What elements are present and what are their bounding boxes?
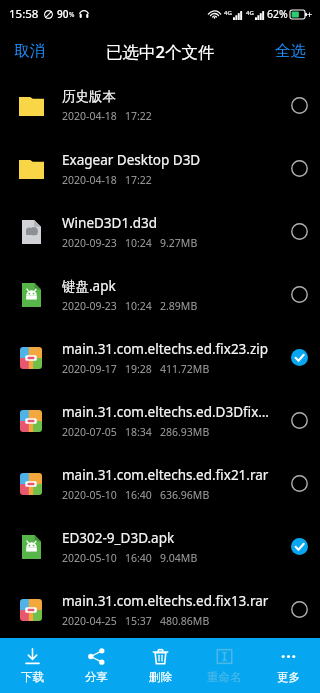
button[interactable]: main.31.com.eltechs.ed.fix23.zip [0,326,320,389]
button[interactable]: 删除 [128,638,192,693]
button[interactable]: Selected [278,326,320,389]
staticText: 全选 [275,41,306,61]
staticText: 2020-04-18 17:22 [62,173,152,187]
button[interactable]: 重命名 [192,638,256,693]
staticText: 2020-04-18 17:22 [62,109,152,123]
button[interactable]: Select [278,452,320,515]
button[interactable]: main.31.com.eltechs.ed.fix12.rar [0,641,320,693]
staticText: 删除 [149,670,172,684]
staticText: 键盘.apk [62,277,116,295]
button[interactable]: 下载 [0,638,64,693]
button[interactable]: Select [278,578,320,641]
staticText: main.31.com.eltechs.ed.fix23.zip [62,340,269,358]
staticText: main.31.com.eltechs.ed.fix13.rar [62,592,269,610]
button[interactable]: Exagear Desktop D3D [0,137,320,200]
staticText: 4G [224,9,232,17]
button[interactable]: 键盘.apk [0,263,320,326]
button[interactable]: 全选 [261,33,320,69]
button[interactable]: Select [278,74,320,137]
staticText: 分享 [85,670,108,684]
staticText: main.31.com.eltechs.ed.fix12.rar [62,649,269,667]
staticText: % [69,10,75,19]
staticText: ED302-9_D3D.apk [62,529,175,547]
staticText: 2020-04-25 15:37 480.86MB [62,614,210,628]
staticText: 已选中2个文件 [106,40,215,63]
button[interactable]: WineD3D1.d3d [0,200,320,263]
staticText: main.31.com.eltechs.ed.D3Dfix2.rar [62,403,270,421]
button[interactable]: main.31.com.eltechs.ed.D3Dfix2.rar [0,389,320,452]
staticText: Exagear Desktop D3D [62,151,201,169]
staticText: 2020-09-17 19:28 411.72MB [62,362,210,376]
button[interactable]: 分享 [64,638,128,693]
button[interactable]: main.31.com.eltechs.ed.fix21.rar [0,452,320,515]
button[interactable]: Select [278,389,320,452]
staticText: 2020-04-20 12:10 390.24MB [62,671,210,685]
button[interactable]: main.31.com.eltechs.ed.fix13.rar [0,578,320,641]
button[interactable]: Select [278,200,320,263]
button[interactable]: 取消 [0,33,59,69]
staticText: 2020-05-10 16:40 636.96MB [62,488,210,502]
staticText: 2020-09-23 10:24 2.89MB [62,299,198,313]
staticText: 62% [267,7,288,21]
staticText: 15:58 [9,6,39,22]
button[interactable]: ED302-9_D3D.apk [0,515,320,578]
staticText: 2020-05-10 16:40 9.04MB [62,551,198,565]
button[interactable]: Select [278,263,320,326]
staticText: 重命名 [207,670,242,684]
button[interactable]: 历史版本 [0,74,320,137]
staticText: 历史版本 [62,88,116,105]
staticText: 2020-07-05 18:34 286.93MB [62,425,210,439]
staticText: + [307,8,313,20]
staticText: 更多 [277,670,300,684]
staticText: WineD3D1.d3d [62,214,158,232]
staticText: 90 [57,7,69,21]
button[interactable]: 更多 [256,638,320,693]
button[interactable]: Select [278,137,320,200]
staticText: 取消 [14,41,45,61]
button[interactable]: Selected [278,515,320,578]
button[interactable]: Select [278,641,320,693]
staticText: 2020-09-23 10:24 9.27MB [62,236,198,250]
staticText: main.31.com.eltechs.ed.fix21.rar [62,466,269,484]
staticText: 下载 [21,670,44,684]
staticText: 4G [246,9,254,17]
